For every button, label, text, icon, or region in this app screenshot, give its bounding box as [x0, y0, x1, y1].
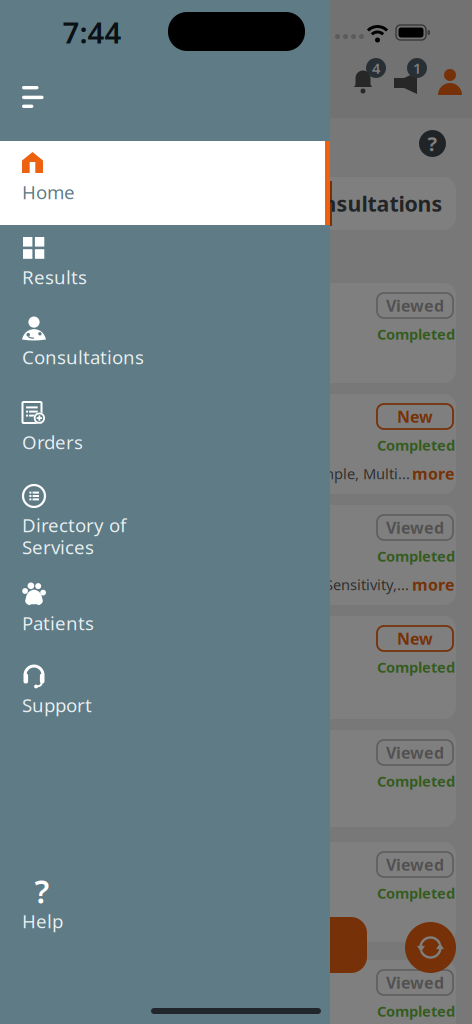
staticText: Directory of	[22, 513, 126, 537]
button[interactable]: Home	[0, 141, 330, 225]
button[interactable]: Result	[16, 616, 456, 719]
staticText: more	[412, 463, 455, 484]
button[interactable]: Viewed	[377, 852, 453, 877]
staticText: Completed	[377, 657, 455, 677]
button[interactable]: Result	[16, 960, 456, 1024]
staticText: Results	[22, 265, 87, 289]
button[interactable]: Consultations	[279, 181, 459, 226]
staticText: Completed	[377, 1001, 455, 1021]
staticText: Orders	[22, 430, 83, 454]
button[interactable]: ?	[22, 878, 102, 932]
button[interactable]: Viewed	[377, 740, 453, 765]
button[interactable]: Support	[0, 656, 330, 736]
staticText: Completed	[377, 771, 455, 791]
button[interactable]: Results	[20, 181, 332, 226]
button[interactable]: Viewed	[377, 970, 453, 995]
staticText: Sensitivity,...	[325, 575, 409, 594]
staticText: 7:44	[62, 12, 121, 51]
button[interactable]: Help	[419, 130, 446, 157]
button[interactable]: Orders	[0, 393, 330, 473]
staticText: Viewed	[386, 517, 444, 538]
staticText: New	[397, 628, 433, 649]
staticText: Completed	[377, 546, 455, 566]
button[interactable]: Sync	[405, 922, 456, 973]
staticText: Support	[22, 693, 92, 717]
staticText: 1	[413, 58, 421, 78]
staticText: Services	[22, 535, 94, 559]
button[interactable]: Results	[0, 228, 330, 308]
button[interactable]: Consultations	[0, 308, 330, 388]
staticText: Consultations	[22, 345, 144, 369]
staticText: 4	[372, 58, 380, 78]
button[interactable]: more	[395, 576, 455, 593]
staticText: Consultations	[295, 189, 442, 218]
staticText: Viewed	[386, 854, 444, 875]
staticText: Viewed	[386, 742, 444, 763]
button[interactable]: Result	[16, 394, 456, 494]
staticText: Home	[22, 180, 75, 204]
staticText: nple, Multi...	[325, 464, 410, 483]
button[interactable]: Result	[16, 842, 456, 942]
button[interactable]: Viewed	[377, 515, 453, 540]
staticText: Help	[22, 909, 63, 933]
staticText: ?	[34, 870, 49, 912]
button[interactable]: New	[377, 404, 453, 429]
button[interactable]: Notifications	[352, 58, 386, 94]
button[interactable]: Directory of	[0, 476, 330, 574]
staticText: Patients	[22, 611, 94, 635]
button[interactable]: Result	[16, 283, 456, 383]
button[interactable]: New order	[127, 917, 367, 973]
staticText: New	[397, 406, 433, 427]
button[interactable]: Account	[438, 69, 462, 95]
button[interactable]: more	[395, 465, 455, 482]
staticText: Viewed	[386, 295, 444, 316]
button[interactable]: Result	[16, 730, 456, 827]
button[interactable]: New	[377, 626, 453, 651]
staticText: Viewed	[386, 972, 444, 993]
staticText: Completed	[377, 883, 455, 903]
staticText: Completed	[377, 435, 455, 455]
button[interactable]: Viewed	[377, 293, 453, 318]
staticText: Completed	[377, 324, 455, 344]
button[interactable]: Announcements	[394, 58, 427, 94]
button[interactable]: Result	[16, 505, 456, 605]
staticText: ?	[427, 130, 437, 157]
staticText: more	[412, 574, 455, 595]
button[interactable]: Patients	[0, 574, 330, 654]
button[interactable]: Close menu	[22, 86, 44, 108]
